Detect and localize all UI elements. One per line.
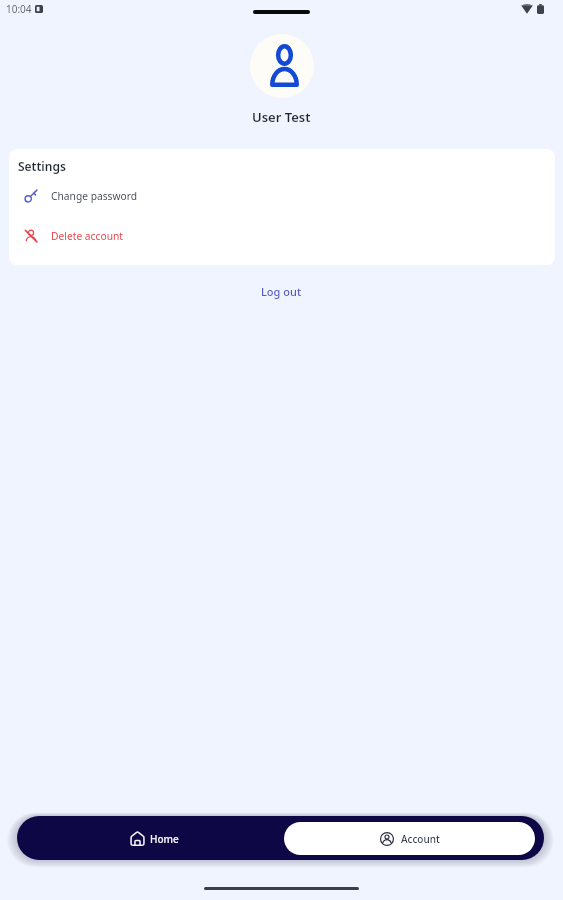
staticText: Log out xyxy=(261,284,302,299)
staticText: 10:04 xyxy=(6,2,32,16)
button[interactable]: Change password xyxy=(9,179,555,213)
staticText: Change password xyxy=(51,189,138,203)
staticText: Delete account xyxy=(51,229,123,243)
staticText: Account xyxy=(401,832,440,846)
button[interactable]: Delete account xyxy=(9,219,555,253)
other: Profile picture xyxy=(250,34,314,98)
staticText: Settings xyxy=(18,158,66,174)
button[interactable]: Account xyxy=(284,822,535,855)
button[interactable]: Home xyxy=(24,816,285,860)
staticText: Home xyxy=(150,832,179,846)
button[interactable]: Log out xyxy=(251,280,312,303)
staticText: User Test xyxy=(252,108,311,126)
